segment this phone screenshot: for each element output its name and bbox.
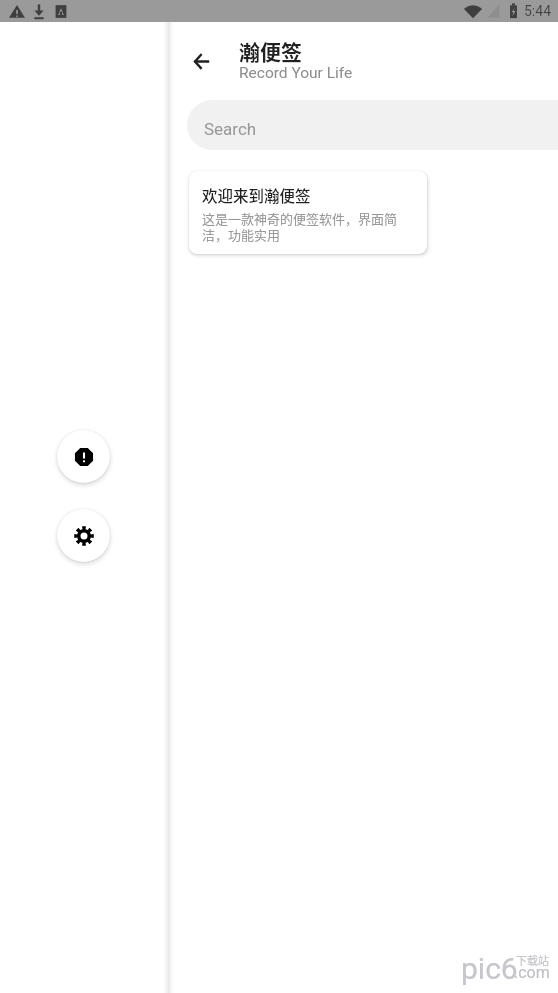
staticText: 这是一款神奇的便签软件，界面简洁，功能实用 xyxy=(202,209,416,244)
staticText: 下载站 xyxy=(516,952,549,968)
button[interactable]: 欢迎来到瀚便签 xyxy=(189,171,427,254)
button[interactable]: Settings xyxy=(57,509,110,562)
staticText: 瀚便签 xyxy=(239,36,302,66)
staticText: 5:44 xyxy=(524,3,551,19)
button[interactable]: About xyxy=(57,430,110,483)
staticText: Search xyxy=(204,119,257,139)
button[interactable]: Back xyxy=(179,39,223,83)
staticText: 欢迎来到瀚便签 xyxy=(202,184,311,206)
button[interactable]: Search xyxy=(187,100,558,150)
staticText: pic6 xyxy=(461,951,518,986)
staticText: .com xyxy=(514,963,550,982)
staticText: Record Your Life xyxy=(239,64,353,82)
